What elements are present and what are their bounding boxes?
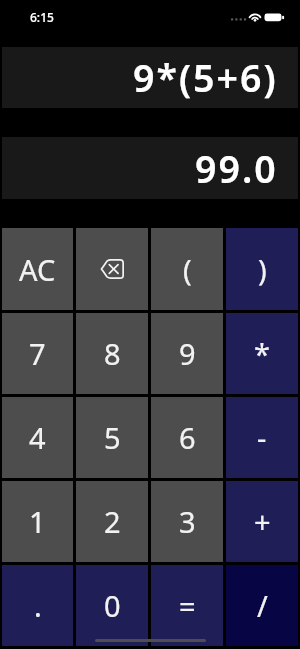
- button[interactable]: 9: [151, 313, 223, 394]
- button[interactable]: /: [226, 565, 298, 646]
- button[interactable]: 1: [2, 481, 73, 562]
- staticText: 4: [29, 418, 46, 457]
- button[interactable]: 3: [151, 481, 223, 562]
- staticText: 0: [104, 586, 121, 625]
- staticText: *: [254, 334, 270, 373]
- staticText: .: [34, 586, 42, 625]
- button[interactable]: (: [151, 228, 223, 310]
- button[interactable]: .: [2, 565, 73, 646]
- button[interactable]: *: [226, 313, 298, 394]
- button[interactable]: 0: [76, 565, 148, 646]
- staticText: -: [257, 418, 267, 457]
- button[interactable]: AC: [2, 228, 73, 310]
- staticText: /: [257, 586, 268, 625]
- staticText: 9*(5+6): [133, 52, 278, 103]
- staticText: 5: [104, 418, 121, 457]
- staticText: 9: [179, 334, 196, 373]
- button[interactable]: 8: [76, 313, 148, 394]
- staticText: 1: [29, 502, 46, 541]
- button[interactable]: ): [226, 228, 298, 310]
- button[interactable]: 6: [151, 397, 223, 478]
- staticText: 8: [104, 334, 121, 373]
- button[interactable]: 2: [76, 481, 148, 562]
- staticText: (: [183, 250, 192, 289]
- staticText: ): [258, 250, 267, 289]
- staticText: +: [254, 502, 271, 541]
- staticText: 2: [104, 502, 121, 541]
- button[interactable]: Backspace: [76, 228, 148, 310]
- button[interactable]: =: [151, 565, 223, 646]
- button[interactable]: 7: [2, 313, 73, 394]
- staticText: 3: [179, 502, 196, 541]
- button[interactable]: 5: [76, 397, 148, 478]
- button[interactable]: +: [226, 481, 298, 562]
- other: Status icons: [228, 11, 286, 22]
- staticText: 99.0: [195, 143, 278, 194]
- button[interactable]: 4: [2, 397, 73, 478]
- staticText: =: [179, 586, 196, 625]
- staticText: 6:15: [30, 9, 54, 25]
- staticText: AC: [19, 250, 56, 289]
- staticText: 7: [29, 334, 46, 373]
- other: Backspace: [100, 259, 124, 279]
- button[interactable]: -: [226, 397, 298, 478]
- staticText: 6: [179, 418, 196, 457]
